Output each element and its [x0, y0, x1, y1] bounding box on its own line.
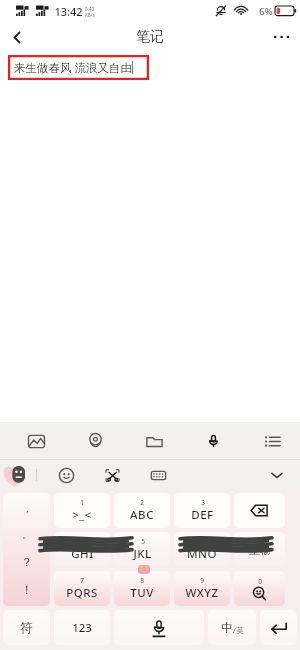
button[interactable]: List: [258, 427, 286, 455]
button[interactable]: Hide keyboard: [264, 462, 290, 488]
staticText: >_<: [72, 507, 92, 523]
staticText: 笔记: [136, 28, 164, 46]
button[interactable]: Voice input: [199, 427, 227, 455]
staticText: 英: [236, 626, 244, 635]
button[interactable]: Files: [140, 427, 168, 455]
button[interactable]: Sticker assistant: [1, 460, 31, 490]
staticText: 2: [140, 498, 144, 507]
staticText: 中: [221, 620, 233, 635]
staticText: ！: [21, 582, 33, 597]
staticText: 0.40: [85, 6, 95, 12]
button[interactable]: Location: [81, 427, 109, 455]
staticText: 0: [258, 577, 262, 586]
button[interactable]: 3: [174, 493, 230, 528]
button[interactable]: 4: [54, 532, 110, 567]
button[interactable]: 2: [114, 493, 170, 528]
staticText: KB/s: [85, 12, 95, 18]
button[interactable]: 9: [174, 571, 230, 606]
staticText: JKL: [133, 546, 152, 562]
staticText: 3: [201, 498, 205, 507]
staticText: TUV: [130, 585, 154, 601]
staticText: ABC: [130, 507, 154, 523]
button[interactable]: Emoji search: [234, 571, 285, 606]
staticText: DEF: [191, 507, 214, 523]
staticText: 来生做春风 流浪又自由: [14, 60, 132, 76]
button[interactable]: 1: [54, 493, 110, 528]
staticText: 13:42: [54, 4, 83, 19]
staticText: ？: [21, 554, 33, 569]
button[interactable]: Cut: [98, 461, 126, 489]
button[interactable]: 123: [54, 610, 110, 645]
button[interactable]: Insert image: [22, 427, 50, 455]
staticText: 重输: [249, 543, 271, 557]
staticText: 符: [20, 620, 33, 636]
button[interactable]: Voice input: [114, 610, 204, 645]
button[interactable]: 符: [3, 610, 50, 645]
button[interactable]: 8: [114, 571, 170, 606]
button[interactable]: 中: [208, 610, 256, 645]
staticText: MNO: [187, 546, 217, 562]
staticText: GHI: [71, 546, 94, 562]
staticText: 5: [141, 537, 145, 546]
staticText: PQRS: [66, 585, 98, 601]
button[interactable]: 7: [54, 571, 110, 606]
staticText: 7: [80, 576, 84, 585]
staticText: /: [233, 625, 236, 635]
staticText: 9: [200, 576, 204, 585]
button[interactable]: ，: [3, 493, 50, 606]
staticText: 8: [140, 576, 144, 585]
button[interactable]: Keyboard layout: [144, 461, 172, 489]
button[interactable]: 重输: [234, 532, 285, 567]
button[interactable]: Back: [0, 22, 34, 52]
button[interactable]: Emoji: [52, 461, 80, 489]
staticText: 6%: [259, 5, 273, 18]
button[interactable]: 5: [114, 532, 170, 567]
staticText: WXYZ: [185, 585, 219, 601]
staticText: 。: [22, 528, 32, 541]
button[interactable]: 6: [174, 532, 230, 567]
button[interactable]: Enter: [260, 610, 297, 645]
button[interactable]: More options: [264, 22, 300, 52]
staticText: 1: [80, 498, 84, 507]
button[interactable]: Delete: [234, 493, 285, 528]
staticText: ，: [22, 502, 32, 515]
staticText: 123: [72, 620, 92, 636]
